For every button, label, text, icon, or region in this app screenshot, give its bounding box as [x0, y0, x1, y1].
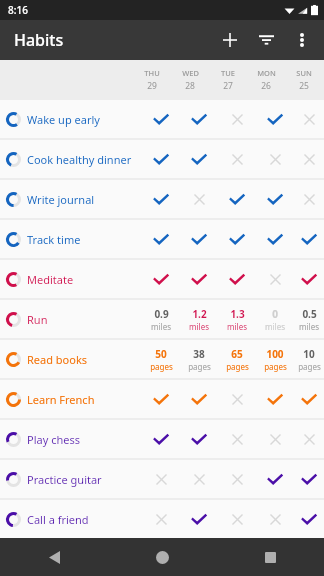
button[interactable]: Completed: [142, 140, 180, 178]
button[interactable]: Filter: [248, 22, 284, 58]
staticText: 100: [266, 347, 284, 361]
button[interactable]: Not completed: [256, 140, 294, 178]
button[interactable]: Completed: [142, 100, 180, 138]
button[interactable]: Completed: [256, 380, 294, 418]
button[interactable]: More options: [284, 22, 320, 58]
button[interactable]: 0.9: [142, 307, 180, 332]
button[interactable]: 65: [218, 347, 256, 372]
button[interactable]: Call a friend: [0, 500, 324, 538]
button[interactable]: Completed: [180, 260, 218, 298]
button[interactable]: 100: [256, 347, 294, 372]
button[interactable]: Not completed: [218, 500, 256, 538]
button[interactable]: Completed: [256, 100, 294, 138]
button[interactable]: Not completed: [180, 180, 218, 218]
button[interactable]: Play chess: [0, 420, 324, 458]
button[interactable]: Completed: [180, 380, 218, 418]
button[interactable]: Not completed: [256, 260, 294, 298]
button[interactable]: Completed: [256, 460, 294, 498]
button[interactable]: Completed: [180, 500, 218, 538]
staticText: miles: [189, 321, 209, 332]
button[interactable]: Completed: [180, 140, 218, 178]
staticText: Habits: [14, 29, 64, 51]
button[interactable]: Meditate: [0, 260, 324, 298]
staticText: miles: [227, 321, 247, 332]
button[interactable]: Completed: [294, 220, 324, 258]
staticText: MON: [257, 68, 276, 78]
button[interactable]: Completed: [294, 500, 324, 538]
button[interactable]: Not completed: [142, 460, 180, 498]
button[interactable]: Completed: [294, 260, 324, 298]
staticText: Call a friend: [27, 512, 89, 527]
button[interactable]: Not completed: [218, 100, 256, 138]
button[interactable]: Completed: [142, 380, 180, 418]
button[interactable]: Not completed: [294, 140, 324, 178]
button[interactable]: Practice guitar: [0, 460, 324, 498]
button[interactable]: 1.2: [180, 307, 218, 332]
button[interactable]: Not completed: [142, 500, 180, 538]
staticText: 28: [185, 80, 195, 92]
button[interactable]: Completed: [256, 180, 294, 218]
staticText: pages: [150, 361, 173, 372]
button[interactable]: Not completed: [294, 100, 324, 138]
button[interactable]: Write journal: [0, 180, 324, 218]
button[interactable]: Completed: [180, 220, 218, 258]
button[interactable]: Completed: [294, 460, 324, 498]
staticText: Cook healthy dinner: [27, 152, 132, 167]
button[interactable]: 10: [294, 347, 324, 372]
button[interactable]: Track time: [0, 220, 324, 258]
button[interactable]: Not completed: [294, 180, 324, 218]
button[interactable]: Wake up early: [0, 100, 324, 138]
button[interactable]: Recents: [216, 538, 324, 576]
staticText: Write journal: [27, 192, 95, 207]
staticText: 27: [223, 80, 233, 92]
button[interactable]: Completed: [142, 220, 180, 258]
button[interactable]: Completed: [142, 180, 180, 218]
button[interactable]: Completed: [218, 180, 256, 218]
staticText: pages: [226, 361, 249, 372]
button[interactable]: 1.3: [218, 307, 256, 332]
staticText: Track time: [27, 232, 81, 247]
button[interactable]: Learn French: [0, 380, 324, 418]
staticText: 50: [155, 347, 167, 361]
button[interactable]: Completed: [256, 220, 294, 258]
button[interactable]: Not completed: [256, 420, 294, 458]
button[interactable]: Completed: [142, 420, 180, 458]
staticText: Meditate: [27, 272, 74, 287]
staticText: 0: [272, 307, 278, 321]
staticText: pages: [298, 361, 321, 372]
button[interactable]: 0: [256, 307, 294, 332]
button[interactable]: 38: [180, 347, 218, 372]
button[interactable]: Not completed: [180, 460, 218, 498]
button[interactable]: Run: [0, 300, 324, 338]
button[interactable]: 50: [142, 347, 180, 372]
button[interactable]: 0.5: [294, 307, 324, 332]
staticText: Wake up early: [27, 112, 100, 127]
button[interactable]: Not completed: [256, 500, 294, 538]
button[interactable]: Completed: [142, 260, 180, 298]
staticText: miles: [299, 321, 319, 332]
button[interactable]: Back: [0, 538, 108, 576]
button[interactable]: Not completed: [294, 420, 324, 458]
staticText: Run: [27, 312, 48, 327]
staticText: 26: [261, 80, 271, 92]
button[interactable]: Completed: [180, 100, 218, 138]
button[interactable]: Cook healthy dinner: [0, 140, 324, 178]
button[interactable]: Add habit: [212, 22, 248, 58]
button[interactable]: Completed: [180, 420, 218, 458]
button[interactable]: Home: [108, 538, 216, 576]
staticText: 65: [231, 347, 243, 361]
button[interactable]: Not completed: [218, 140, 256, 178]
staticText: Play chess: [27, 432, 80, 447]
staticText: 1.2: [192, 307, 207, 321]
button[interactable]: Not completed: [218, 380, 256, 418]
staticText: Read books: [27, 352, 88, 367]
button[interactable]: Read books: [0, 340, 324, 378]
staticText: 10: [303, 347, 315, 361]
button[interactable]: Completed: [294, 380, 324, 418]
staticText: 38: [193, 347, 205, 361]
staticText: Practice guitar: [27, 472, 102, 487]
button[interactable]: Not completed: [218, 460, 256, 498]
button[interactable]: Completed: [218, 220, 256, 258]
button[interactable]: Not completed: [218, 420, 256, 458]
button[interactable]: Completed: [218, 260, 256, 298]
